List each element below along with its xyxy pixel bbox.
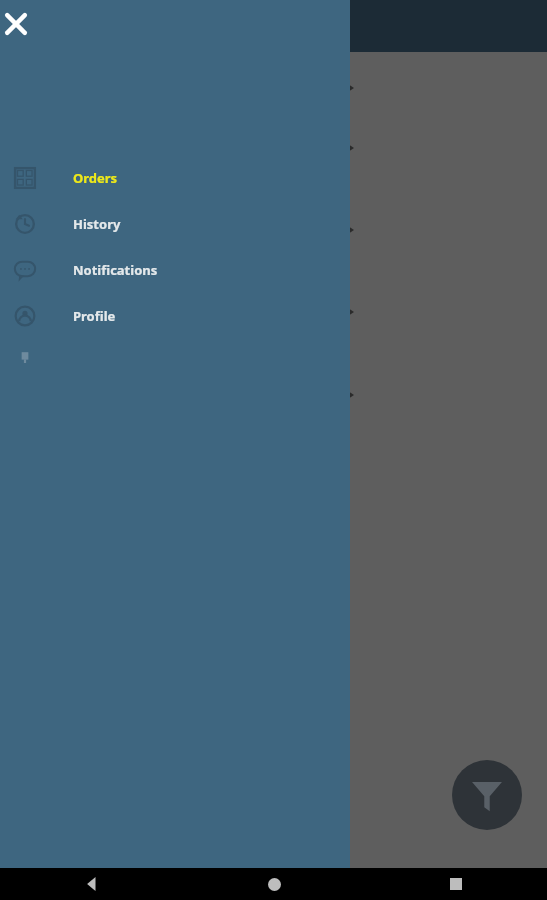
staticText: History: [73, 215, 121, 233]
button[interactable]: Filter: [452, 760, 522, 830]
button[interactable]: Back: [0, 868, 183, 900]
staticText: Orders: [73, 169, 118, 187]
staticText: Profile: [73, 307, 116, 325]
button[interactable]: Recent apps: [365, 868, 547, 900]
button[interactable]: Notifications: [0, 247, 350, 293]
button[interactable]: Close navigation drawer: [0, 0, 40, 48]
button[interactable]: Home: [183, 868, 365, 900]
button[interactable]: History: [0, 201, 350, 247]
button[interactable]: Orders: [0, 155, 350, 201]
button[interactable]: Profile: [0, 293, 350, 339]
staticText: Notifications: [73, 261, 158, 279]
